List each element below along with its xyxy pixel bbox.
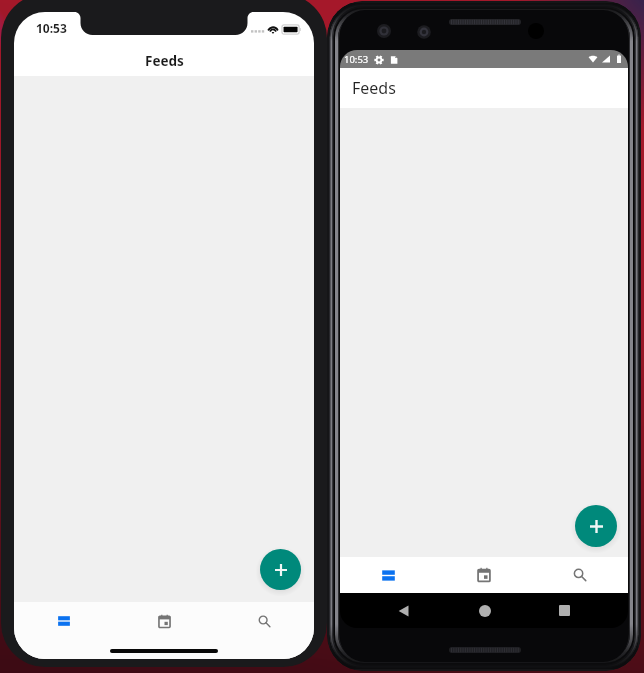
button[interactable]: Feeds [14,604,114,638]
button[interactable]: Back [386,593,421,628]
button[interactable]: Feeds [340,558,436,592]
staticText: Feeds [352,77,396,99]
staticText: 10:53 [344,53,369,66]
staticText: 10:53 [36,20,67,36]
button[interactable]: Recents [547,593,582,628]
button[interactable]: Add [575,505,617,547]
button[interactable]: Calendar [114,604,214,638]
button[interactable]: Search [214,604,314,638]
button[interactable]: Add [260,549,301,590]
button[interactable]: Calendar [436,558,532,592]
button[interactable]: Search [532,558,628,592]
button[interactable]: Home [467,593,502,628]
staticText: Feeds [145,52,184,70]
